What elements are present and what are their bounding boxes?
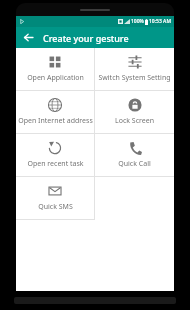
button[interactable]: Open Application [16, 48, 94, 90]
staticText: Quick SMS [38, 202, 73, 212]
staticText: Open Internet address [18, 116, 93, 126]
staticText: Open Application [27, 73, 84, 83]
button[interactable]: Quick Call [95, 134, 174, 176]
staticText: Create your gesture [43, 32, 129, 44]
staticText: 100% [131, 18, 144, 25]
staticText: Quick Call [118, 159, 151, 169]
button[interactable]: Back [20, 29, 37, 46]
button[interactable]: Quick SMS [16, 177, 94, 219]
staticText: Lock Screen [115, 116, 154, 126]
button[interactable]: Open Internet address [16, 91, 94, 133]
staticText: Switch System Setting [98, 73, 171, 83]
button[interactable]: Switch System Setting [95, 48, 174, 90]
staticText: 10:53 AM [149, 18, 171, 25]
button[interactable]: Lock Screen [95, 91, 174, 133]
button[interactable]: Open recent task [16, 134, 94, 176]
staticText: Open recent task [27, 159, 84, 169]
